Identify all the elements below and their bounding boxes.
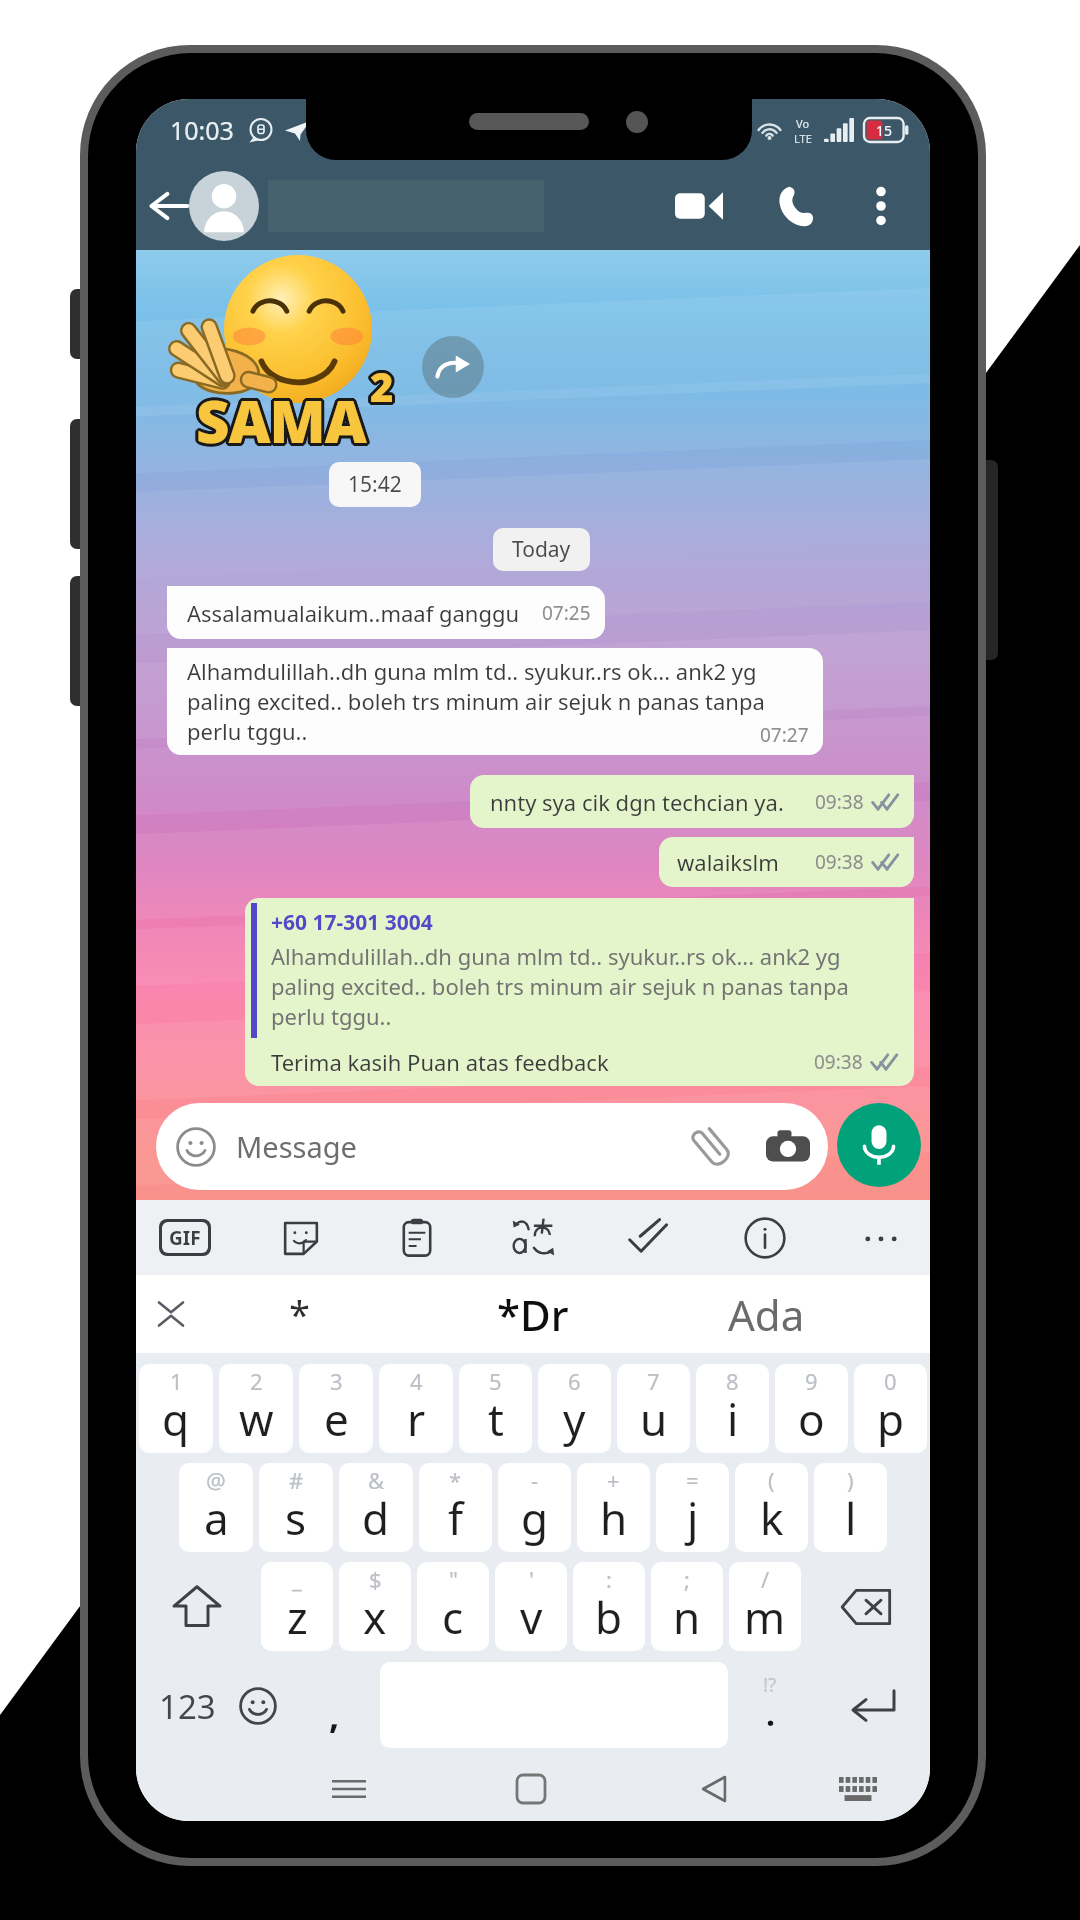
staticText: r [407,1389,426,1449]
staticText: walaikslm [677,847,779,877]
button[interactable]: ( [735,1463,808,1552]
button[interactable]: " [417,1562,489,1651]
button[interactable]: 0 [854,1364,927,1453]
staticText: SAMA [196,378,366,457]
button[interactable]: More options [850,175,912,237]
button[interactable]: Hide keyboard [823,1756,893,1821]
button[interactable]: Info [730,1200,800,1275]
staticText: 09:38 [815,789,864,815]
button[interactable]: Back [679,1756,749,1821]
staticText: 07:27 [760,722,809,748]
button[interactable]: 3 [299,1364,373,1453]
button[interactable]: ' [495,1562,567,1651]
staticText: - [531,1465,539,1495]
staticText: SAMA [194,383,364,462]
button[interactable]: Backspace [804,1557,930,1656]
button[interactable]: - [498,1463,571,1552]
button[interactable]: $ [339,1562,411,1651]
staticText: t [488,1389,504,1449]
button[interactable]: 6 [538,1364,611,1453]
button[interactable]: Translate [498,1200,568,1275]
button[interactable]: ; [651,1562,723,1651]
button[interactable]: # [259,1463,333,1552]
staticText: 9 [805,1366,818,1396]
staticText: Vo [796,116,810,131]
button[interactable]: Stickers [266,1200,336,1275]
staticText: SAMA [193,381,363,460]
button[interactable]: 4 [379,1364,453,1453]
staticText: 2 [369,362,393,416]
staticText: 2 [372,360,396,414]
staticText: 2 [369,356,393,410]
button[interactable]: More [846,1200,916,1275]
button[interactable]: Assalamualaikum..maaf ganggu [167,586,605,639]
button[interactable]: Message [176,1103,810,1190]
staticText: Ada [728,1286,805,1343]
button[interactable]: / [729,1562,801,1651]
staticText: $ [369,1564,382,1594]
staticText: x [363,1587,387,1647]
staticText: ) [847,1465,854,1495]
staticText: SAMA [194,382,364,461]
staticText: m [744,1587,786,1647]
staticText: 2 [367,359,391,413]
button[interactable]: Enter [836,1656,908,1756]
button[interactable]: *Dr [473,1275,593,1353]
staticText: 10:03 [170,113,234,147]
button[interactable]: +60 17-301 3004 [245,898,914,1086]
button[interactable]: Clipboard [382,1200,452,1275]
staticText: 2 [370,356,394,410]
button[interactable]: 1 [139,1364,213,1453]
button[interactable]: !? [742,1656,798,1756]
button[interactable]: _ [261,1562,333,1651]
button[interactable]: 9 [775,1364,848,1453]
staticText: n [673,1587,701,1647]
staticText: Terima kasih Puan atas feedback [271,1047,609,1077]
staticText: + [607,1465,620,1495]
button[interactable]: Recents [314,1756,384,1821]
button[interactable]: walaikslm [659,837,914,887]
button[interactable]: nnty sya cik dgn techcian ya. [470,775,914,828]
button[interactable]: Emoji [230,1656,286,1756]
button[interactable]: Voice message [837,1103,921,1187]
button[interactable]: 123 [142,1656,232,1756]
staticText: ( [768,1465,775,1495]
button[interactable]: 8 [696,1364,769,1453]
button[interactable]: : [573,1562,645,1651]
button[interactable]: * [269,1275,329,1353]
button[interactable]: Expand suggestions [141,1275,201,1353]
staticText: SAMA [199,380,369,459]
button[interactable]: Home [496,1756,566,1821]
button[interactable]: Alhamdulillah..dh guna mlm td.. syukur..… [167,648,823,755]
button[interactable]: 2 [219,1364,293,1453]
button[interactable]: Voice call [765,175,827,237]
button[interactable]: ) [814,1463,887,1552]
button[interactable]: = [656,1463,729,1552]
button[interactable]: 5 [459,1364,532,1453]
button[interactable]: + [577,1463,650,1552]
button[interactable]: @ [179,1463,253,1552]
staticText: f [448,1488,464,1548]
button[interactable]: & [339,1463,413,1552]
button[interactable]: GIF [150,1200,220,1275]
button[interactable]: , [306,1656,362,1756]
button[interactable]: Video call [668,175,730,237]
button[interactable]: Forward [422,336,484,398]
staticText: 2 [371,361,395,415]
button[interactable]: Shift [136,1557,258,1656]
staticText: 2 [373,360,397,414]
button[interactable]: Profile photo [189,171,259,241]
staticText: & [368,1465,385,1495]
staticText: SAMA [197,383,367,462]
staticText: c [442,1587,464,1647]
staticText: 2 [369,361,393,415]
staticText: SAMA [198,382,368,461]
button[interactable]: Ada [706,1275,826,1353]
button[interactable]: 7 [617,1364,690,1453]
staticText: @ [206,1465,226,1495]
button[interactable]: Spell check [614,1200,684,1275]
button[interactable]: * [419,1463,492,1552]
button[interactable]: Back [140,177,198,235]
